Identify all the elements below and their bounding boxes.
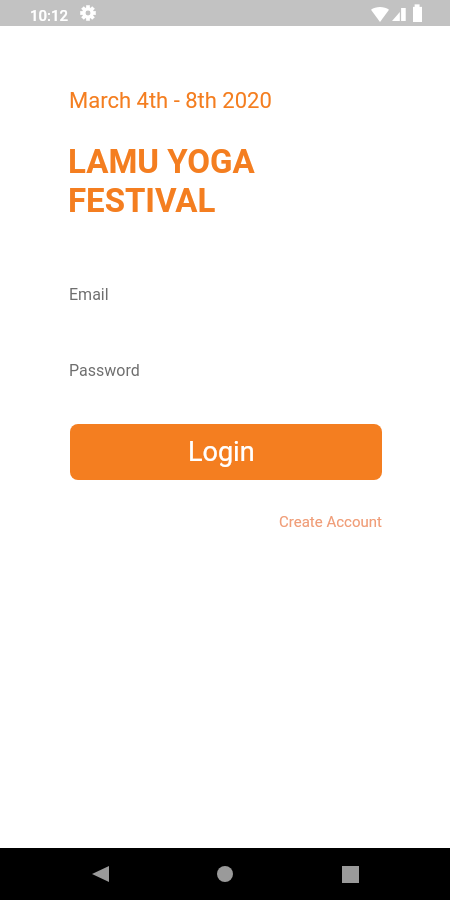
staticText: Password xyxy=(69,361,140,380)
button[interactable]: Create Account xyxy=(277,505,384,539)
button[interactable]: Home xyxy=(150,848,300,900)
button[interactable]: Login xyxy=(70,424,382,480)
staticText: Email xyxy=(69,285,109,304)
other: Settings xyxy=(80,5,96,21)
staticText: LAMU YOGA FESTIVAL xyxy=(68,142,255,220)
staticText: 10:12 xyxy=(30,7,69,25)
staticText: March 4th - 8th 2020 xyxy=(69,88,272,114)
staticText: Create Account xyxy=(279,513,382,531)
button[interactable]: Back xyxy=(0,848,150,900)
staticText: Login xyxy=(188,436,255,468)
button[interactable]: Recent apps xyxy=(300,848,450,900)
